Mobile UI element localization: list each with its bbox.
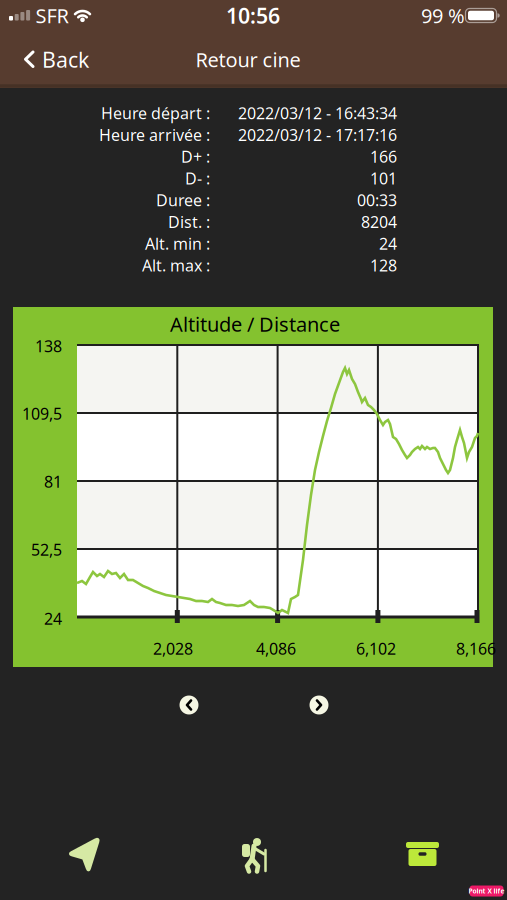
staticText: Alt. min :	[145, 233, 210, 254]
staticText: 109,5	[22, 403, 62, 424]
staticText: 138	[35, 335, 62, 357]
staticText: Altitude / Distance	[170, 311, 340, 337]
staticText: 00:33	[357, 189, 397, 211]
button[interactable]: Back	[20, 42, 92, 76]
staticText: Duree :	[156, 189, 210, 211]
staticText: 52,5	[31, 539, 62, 560]
staticText: 166	[370, 146, 397, 167]
staticText: Alt. max :	[142, 255, 210, 276]
staticText: 6,102	[356, 638, 396, 659]
staticText: 2022/03/12 - 16:43:34	[238, 102, 397, 124]
staticText: 128	[370, 255, 397, 276]
staticText: 2022/03/12 - 17:17:16	[238, 124, 397, 145]
staticText: Back	[42, 45, 89, 74]
staticText: Heure arrivée :	[99, 124, 210, 145]
staticText: 2,028	[153, 638, 193, 659]
staticText: Heure départ :	[101, 102, 210, 124]
staticText: SFR	[35, 2, 68, 29]
staticText: 101	[370, 168, 397, 189]
button[interactable]: Navigation	[64, 834, 104, 874]
button[interactable]: Previous	[179, 695, 198, 714]
staticText: D+ :	[181, 146, 210, 167]
staticText: Retour cine	[195, 46, 300, 73]
staticText: 10:56	[226, 1, 280, 30]
staticText: Point X life	[468, 887, 504, 895]
staticText: 8204	[361, 211, 397, 232]
staticText: Dist. :	[168, 211, 210, 232]
button[interactable]: Hiking	[234, 835, 274, 875]
button[interactable]: Next	[309, 695, 328, 714]
staticText: 24	[44, 608, 62, 629]
staticText: 8,166	[456, 638, 496, 659]
staticText: 99 %	[421, 2, 465, 29]
staticText: 24	[379, 233, 397, 254]
staticText: 81	[44, 471, 62, 492]
staticText: D- :	[185, 168, 210, 189]
staticText: 4,086	[256, 638, 296, 659]
button[interactable]: Archive	[402, 834, 442, 874]
